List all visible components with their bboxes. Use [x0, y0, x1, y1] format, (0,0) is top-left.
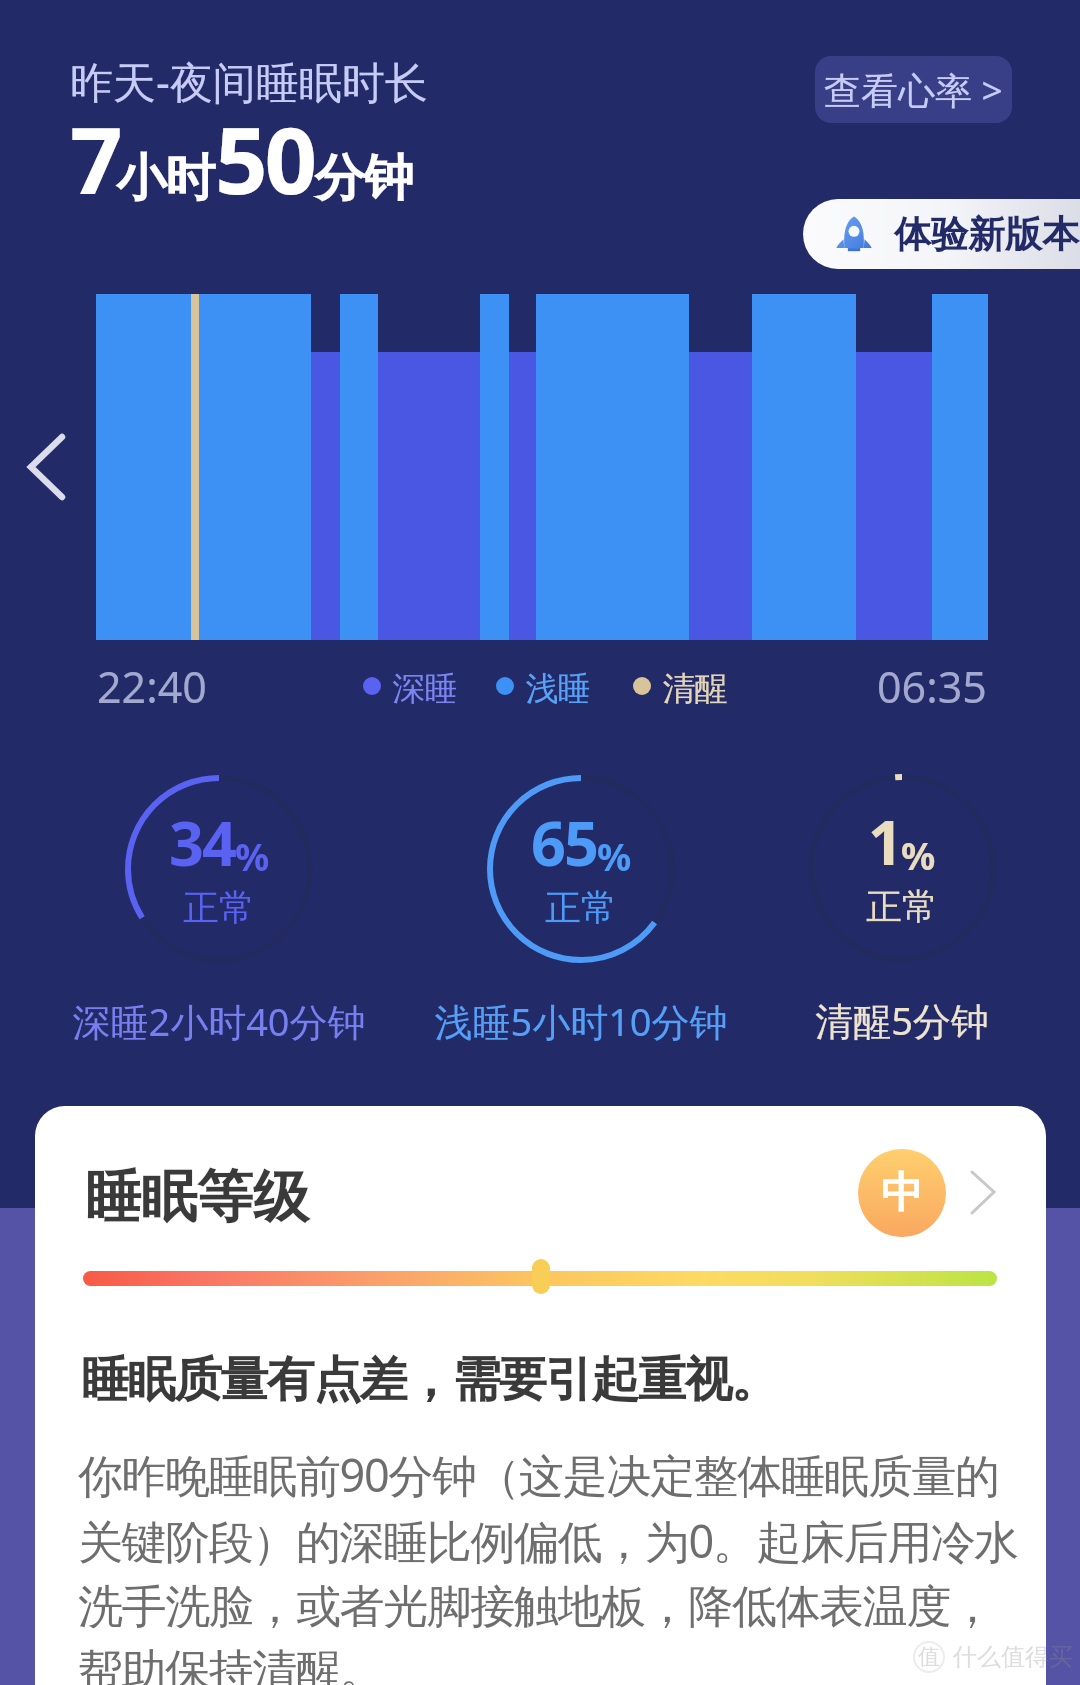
- button[interactable]: 浅睡5小时10分钟: [461, 778, 701, 960]
- staticText: %: [235, 830, 270, 882]
- staticText: 深睡2小时40分钟: [0, 995, 439, 1047]
- staticText: 浅睡5小时10分钟: [361, 995, 801, 1047]
- staticText: 清醒: [663, 668, 727, 704]
- staticText: 正常: [866, 884, 938, 929]
- button[interactable]: Previous day: [14, 424, 78, 510]
- button[interactable]: 睡眠阶段图表: [96, 294, 988, 640]
- staticText: 睡眠等级: [85, 1162, 309, 1233]
- button[interactable]: 深睡2小时40分钟: [99, 778, 339, 960]
- staticText: 正常: [545, 885, 617, 930]
- staticText: %: [597, 830, 632, 882]
- staticText: 正常: [183, 885, 255, 930]
- staticText: 你昨晚睡眠前90分钟（这是决定整体睡眠质量的 关键阶段）的深睡比例偏低，为0。起…: [78, 1444, 1046, 1685]
- staticText: 睡眠质量有点差，需要引起重视。: [82, 1350, 778, 1410]
- button[interactable]: 睡眠等级 中: [35, 1106, 1046, 1246]
- button[interactable]: 体验新版本: [803, 199, 1080, 269]
- staticText: 中: [881, 1167, 923, 1220]
- button[interactable]: 查看心率 >: [815, 56, 1012, 123]
- staticText: 值: [918, 1643, 940, 1671]
- staticText: 深睡: [393, 668, 457, 704]
- staticText: 查看心率 >: [824, 64, 1003, 115]
- staticText: 7: [70, 96, 117, 221]
- staticText: 清醒5分钟: [682, 994, 1080, 1046]
- staticText: 65: [531, 801, 597, 884]
- button[interactable]: 清醒5分钟: [782, 777, 1022, 959]
- staticText: 体验新版本: [894, 211, 1079, 258]
- staticText: 22:40: [97, 657, 207, 716]
- staticText: 小时: [117, 147, 215, 210]
- staticText: 什么值得买: [953, 1642, 1073, 1672]
- staticText: 06:35: [877, 657, 987, 716]
- staticText: 昨天-夜间睡眠时长: [70, 52, 428, 111]
- staticText: 50: [215, 96, 315, 221]
- staticText: 1: [868, 800, 901, 883]
- staticText: 浅睡: [526, 668, 590, 704]
- staticText: 分钟: [315, 147, 413, 210]
- staticText: 34: [169, 801, 235, 884]
- staticText: %: [901, 829, 936, 881]
